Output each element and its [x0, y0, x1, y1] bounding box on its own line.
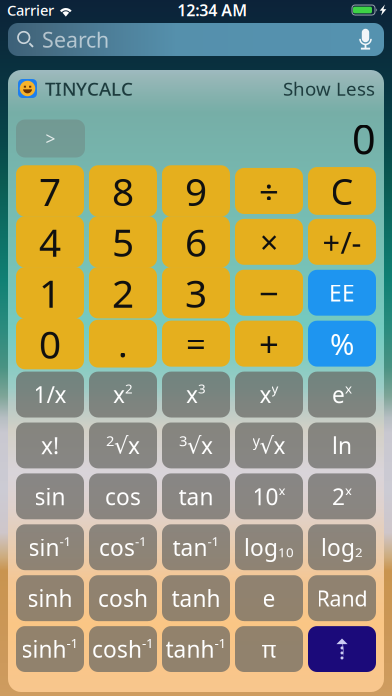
button[interactable]: 3x [162, 422, 230, 468]
staticText: sinh [21, 634, 66, 664]
staticText: sinh [27, 583, 72, 613]
button[interactable]: = [162, 321, 230, 367]
button[interactable]: sinh [16, 575, 84, 621]
staticText: tan [178, 481, 213, 511]
staticText: x [259, 379, 271, 410]
staticText: 6 [185, 216, 207, 267]
staticText: > [45, 127, 55, 150]
button[interactable]: +/- [308, 219, 376, 265]
button[interactable]: cosh-1 [89, 626, 157, 672]
button[interactable]: log2 [308, 524, 376, 570]
staticText: 9 [185, 165, 207, 217]
button[interactable]: 7 [16, 168, 84, 214]
button[interactable]: x3 [162, 372, 230, 417]
staticText: π [261, 634, 276, 664]
staticText: 3 [185, 267, 207, 318]
staticText: Rand [316, 584, 367, 612]
button[interactable]: History [16, 119, 85, 157]
button[interactable]: sin-1 [16, 524, 84, 570]
button[interactable]: Show Less [283, 76, 375, 101]
staticText: cos [99, 532, 135, 562]
button[interactable]: % [308, 321, 376, 367]
button[interactable]: sin [16, 473, 84, 519]
staticText: y [271, 380, 278, 397]
button[interactable]: ln [308, 422, 376, 468]
button[interactable]: cosh [89, 575, 157, 621]
staticText: C [330, 167, 353, 215]
button[interactable]: − [235, 270, 303, 316]
staticText: 4 [39, 216, 61, 267]
staticText: TINYCALC [45, 76, 133, 101]
button[interactable]: xy [235, 372, 303, 417]
button[interactable]: ex [308, 372, 376, 417]
staticText: 2 [125, 380, 133, 397]
button[interactable]: 2 [89, 270, 157, 316]
button[interactable]: 9 [162, 168, 230, 214]
staticText: x! [41, 430, 59, 460]
button[interactable]: EE [308, 270, 376, 316]
button[interactable]: sinh-1 [16, 626, 84, 672]
button[interactable]: tan [162, 473, 230, 519]
staticText: x [128, 430, 140, 460]
button[interactable]: x! [16, 422, 84, 468]
button[interactable]: 3 [162, 270, 230, 316]
staticText: √ [259, 433, 273, 458]
button[interactable]: Collapse [308, 626, 376, 672]
staticText: x [201, 430, 213, 460]
staticText: Carrier [7, 0, 54, 20]
button[interactable]: 10x [235, 473, 303, 519]
staticText: e [332, 379, 345, 410]
staticText: 10 [252, 481, 278, 511]
staticText: Show Less [283, 76, 375, 101]
button[interactable]: × [235, 219, 303, 265]
button[interactable]: C [308, 168, 376, 214]
button[interactable]: Search [8, 23, 384, 56]
staticText: 10 [278, 543, 294, 561]
staticText: 2 [355, 543, 363, 561]
staticText: sin [34, 481, 65, 511]
button[interactable]: 2x [308, 473, 376, 519]
button[interactable]: ÷ [235, 168, 303, 214]
staticText: x [345, 380, 352, 397]
staticText: -1 [59, 532, 71, 550]
staticText: = [186, 321, 206, 367]
staticText: 5 [112, 216, 134, 267]
button[interactable]: tanh-1 [162, 626, 230, 672]
staticText: x [278, 481, 285, 499]
button[interactable]: 2x [89, 422, 157, 468]
button[interactable]: 5 [89, 219, 157, 265]
staticText: -1 [214, 634, 226, 652]
button[interactable]: π [235, 626, 303, 672]
staticText: tanh [165, 634, 214, 664]
staticText: . [118, 320, 128, 367]
button[interactable]: e [235, 575, 303, 621]
button[interactable]: cos [89, 473, 157, 519]
button[interactable]: + [235, 321, 303, 367]
button[interactable]: tan-1 [162, 524, 230, 570]
staticText: tan [172, 532, 207, 562]
staticText: x [186, 379, 198, 410]
button[interactable]: . [89, 321, 157, 367]
staticText: x [273, 430, 285, 460]
button[interactable]: cos-1 [89, 524, 157, 570]
staticText: 3 [198, 380, 206, 397]
button[interactable]: Rand [308, 575, 376, 621]
button[interactable]: tanh [162, 575, 230, 621]
button[interactable]: 6 [162, 219, 230, 265]
staticText: √ [114, 433, 128, 458]
staticText: sin [28, 532, 59, 562]
button[interactable]: 8 [89, 168, 157, 214]
button[interactable]: 1/x [16, 372, 84, 417]
staticText: -1 [207, 532, 219, 550]
button[interactable]: 0 [16, 321, 84, 367]
staticText: log [321, 532, 355, 562]
button[interactable]: log10 [235, 524, 303, 570]
button[interactable]: 1 [16, 270, 84, 316]
button[interactable]: x2 [89, 372, 157, 417]
staticText: + [259, 321, 279, 367]
button[interactable]: 4 [16, 219, 84, 265]
staticText: ÷ [259, 168, 279, 214]
staticText: 1/x [33, 379, 66, 410]
staticText: log [244, 532, 278, 562]
button[interactable]: yx [235, 422, 303, 468]
